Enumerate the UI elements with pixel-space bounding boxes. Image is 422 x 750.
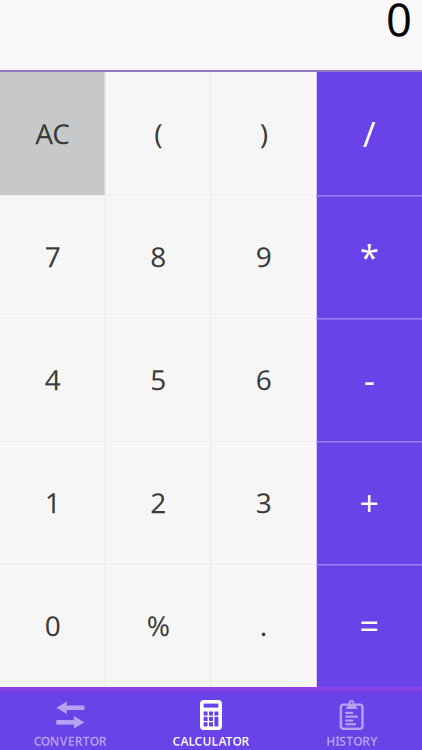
- staticText: 5: [150, 361, 166, 398]
- staticText: +: [359, 479, 379, 525]
- staticText: HISTORY: [326, 733, 377, 749]
- button[interactable]: 2: [105, 441, 211, 564]
- staticText: 1: [45, 484, 61, 521]
- button[interactable]: 3: [211, 441, 316, 564]
- button[interactable]: =: [316, 564, 422, 687]
- button[interactable]: CALCULATOR: [141, 693, 281, 750]
- staticText: /: [363, 110, 376, 156]
- staticText: 4: [45, 361, 61, 398]
- staticText: *: [360, 233, 379, 279]
- button[interactable]: 7: [0, 195, 105, 318]
- staticText: ): [260, 115, 268, 152]
- button[interactable]: 9: [211, 195, 316, 318]
- button[interactable]: HISTORY: [281, 693, 422, 750]
- staticText: CALCULATOR: [172, 733, 249, 749]
- button[interactable]: 4: [0, 318, 105, 441]
- staticText: 6: [256, 361, 272, 398]
- staticText: AC: [35, 115, 70, 152]
- staticText: 2: [150, 484, 166, 521]
- staticText: 3: [256, 484, 272, 521]
- button[interactable]: .: [211, 564, 316, 687]
- button[interactable]: 1: [0, 441, 105, 564]
- staticText: -: [364, 356, 375, 402]
- staticText: 7: [45, 238, 61, 275]
- staticText: =: [359, 602, 379, 648]
- button[interactable]: (: [105, 72, 211, 195]
- button[interactable]: CONVERTOR: [0, 693, 141, 750]
- staticText: 0: [386, 0, 412, 49]
- staticText: 0: [45, 607, 61, 644]
- button[interactable]: +: [316, 441, 422, 564]
- staticText: (: [154, 115, 162, 152]
- button[interactable]: ): [211, 72, 316, 195]
- button[interactable]: AC: [0, 72, 105, 195]
- button[interactable]: -: [316, 318, 422, 441]
- staticText: %: [147, 607, 170, 644]
- button[interactable]: 8: [105, 195, 211, 318]
- button[interactable]: 5: [105, 318, 211, 441]
- staticText: .: [260, 607, 268, 644]
- staticText: CONVERTOR: [34, 733, 107, 749]
- staticText: 9: [256, 238, 272, 275]
- button[interactable]: 6: [211, 318, 316, 441]
- button[interactable]: *: [316, 195, 422, 318]
- button[interactable]: 0: [0, 564, 105, 687]
- button[interactable]: /: [316, 72, 422, 195]
- button[interactable]: %: [105, 564, 211, 687]
- staticText: 8: [150, 238, 166, 275]
